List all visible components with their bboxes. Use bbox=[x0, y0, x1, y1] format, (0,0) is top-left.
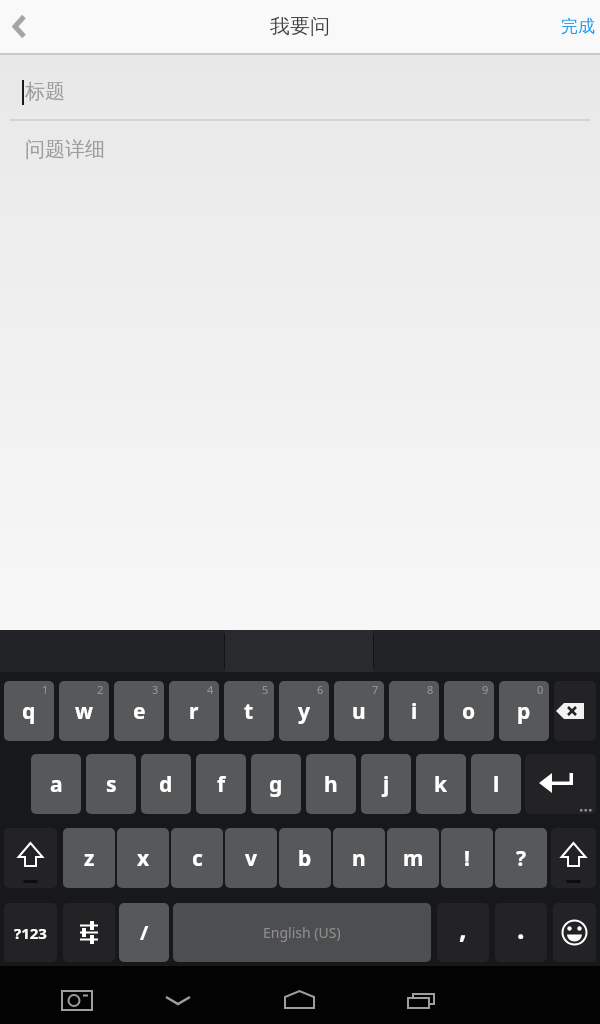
button[interactable] bbox=[397, 976, 445, 1024]
staticText: j bbox=[383, 770, 390, 799]
button[interactable]: f bbox=[196, 754, 246, 814]
button[interactable]: 问题详细 bbox=[0, 121, 600, 177]
staticText: c bbox=[192, 844, 203, 873]
button[interactable]: p bbox=[499, 681, 549, 741]
button[interactable]: i bbox=[389, 681, 439, 741]
button[interactable]: ? bbox=[495, 828, 547, 888]
button[interactable]: n bbox=[333, 828, 385, 888]
button[interactable]: 完成 bbox=[556, 0, 600, 53]
button[interactable]: k bbox=[416, 754, 466, 814]
button[interactable] bbox=[53, 976, 101, 1024]
button[interactable]: j bbox=[361, 754, 411, 814]
staticText: e bbox=[133, 697, 146, 726]
button[interactable]: m bbox=[387, 828, 439, 888]
staticText: 1 bbox=[42, 682, 49, 697]
button[interactable] bbox=[276, 976, 324, 1024]
button[interactable]: d bbox=[141, 754, 191, 814]
button[interactable]: w bbox=[59, 681, 109, 741]
staticText: ?123 bbox=[14, 923, 47, 943]
button[interactable]: u bbox=[334, 681, 384, 741]
button[interactable]: r bbox=[169, 681, 219, 741]
staticText: f bbox=[217, 770, 226, 799]
staticText: 问题详细 bbox=[25, 137, 105, 162]
staticText: u bbox=[352, 697, 366, 726]
staticText: 8 bbox=[427, 682, 434, 697]
button[interactable]: . bbox=[495, 903, 547, 962]
staticText: x bbox=[137, 844, 150, 873]
staticText: ! bbox=[464, 844, 470, 873]
button[interactable]: , bbox=[437, 903, 489, 962]
staticText: g bbox=[269, 770, 283, 799]
button[interactable] bbox=[525, 754, 596, 814]
staticText: 9 bbox=[482, 682, 489, 697]
staticText: z bbox=[84, 844, 95, 873]
staticText: d bbox=[159, 770, 173, 799]
staticText: t bbox=[244, 697, 254, 726]
staticText: 0 bbox=[537, 682, 544, 697]
staticText: 完成 bbox=[561, 16, 595, 37]
button[interactable]: y bbox=[279, 681, 329, 741]
button[interactable]: e bbox=[114, 681, 164, 741]
staticText: s bbox=[106, 770, 117, 799]
staticText: 标题 bbox=[25, 79, 65, 104]
button[interactable] bbox=[551, 828, 596, 888]
button[interactable]: / bbox=[119, 903, 169, 962]
staticText: r bbox=[189, 697, 199, 726]
staticText: 2 bbox=[97, 682, 104, 697]
button[interactable] bbox=[0, 0, 46, 53]
staticText: v bbox=[245, 844, 257, 873]
staticText: y bbox=[298, 697, 310, 726]
staticText: ? bbox=[516, 844, 527, 873]
staticText: 6 bbox=[317, 682, 324, 697]
staticText: w bbox=[75, 697, 93, 726]
staticText: h bbox=[324, 770, 338, 799]
button[interactable]: h bbox=[306, 754, 356, 814]
button[interactable]: t bbox=[224, 681, 274, 741]
staticText: 7 bbox=[372, 682, 379, 697]
button[interactable]: c bbox=[171, 828, 223, 888]
staticText: b bbox=[298, 844, 312, 873]
staticText: . bbox=[517, 910, 525, 947]
button[interactable]: z bbox=[63, 828, 115, 888]
button[interactable] bbox=[553, 903, 596, 962]
button[interactable]: v bbox=[225, 828, 277, 888]
staticText: a bbox=[50, 770, 63, 799]
button[interactable]: b bbox=[279, 828, 331, 888]
button[interactable] bbox=[4, 828, 57, 888]
staticText: 3 bbox=[152, 682, 159, 697]
button[interactable]: English (US) bbox=[173, 903, 431, 962]
button[interactable]: o bbox=[444, 681, 494, 741]
staticText: o bbox=[462, 697, 476, 726]
staticText: n bbox=[352, 844, 366, 873]
staticText: p bbox=[517, 697, 531, 726]
button[interactable]: x bbox=[117, 828, 169, 888]
staticText: 4 bbox=[207, 682, 214, 697]
staticText: / bbox=[140, 919, 149, 946]
staticText: q bbox=[22, 697, 36, 726]
button[interactable]: 标题 bbox=[0, 55, 600, 119]
staticText: m bbox=[403, 844, 424, 873]
staticText: English (US) bbox=[263, 923, 341, 942]
button[interactable]: q bbox=[4, 681, 54, 741]
staticText: 我要问 bbox=[270, 14, 330, 39]
staticText: , bbox=[459, 910, 467, 947]
button[interactable]: g bbox=[251, 754, 301, 814]
button[interactable] bbox=[554, 681, 596, 741]
button[interactable]: ?123 bbox=[4, 903, 57, 962]
button[interactable]: l bbox=[471, 754, 521, 814]
staticText: i bbox=[411, 697, 418, 726]
button[interactable]: a bbox=[31, 754, 81, 814]
staticText: k bbox=[434, 770, 448, 799]
button[interactable]: s bbox=[86, 754, 136, 814]
button[interactable] bbox=[63, 903, 115, 962]
button[interactable] bbox=[154, 976, 202, 1024]
button[interactable]: ! bbox=[441, 828, 493, 888]
staticText: 5 bbox=[262, 682, 269, 697]
staticText: l bbox=[493, 770, 500, 799]
